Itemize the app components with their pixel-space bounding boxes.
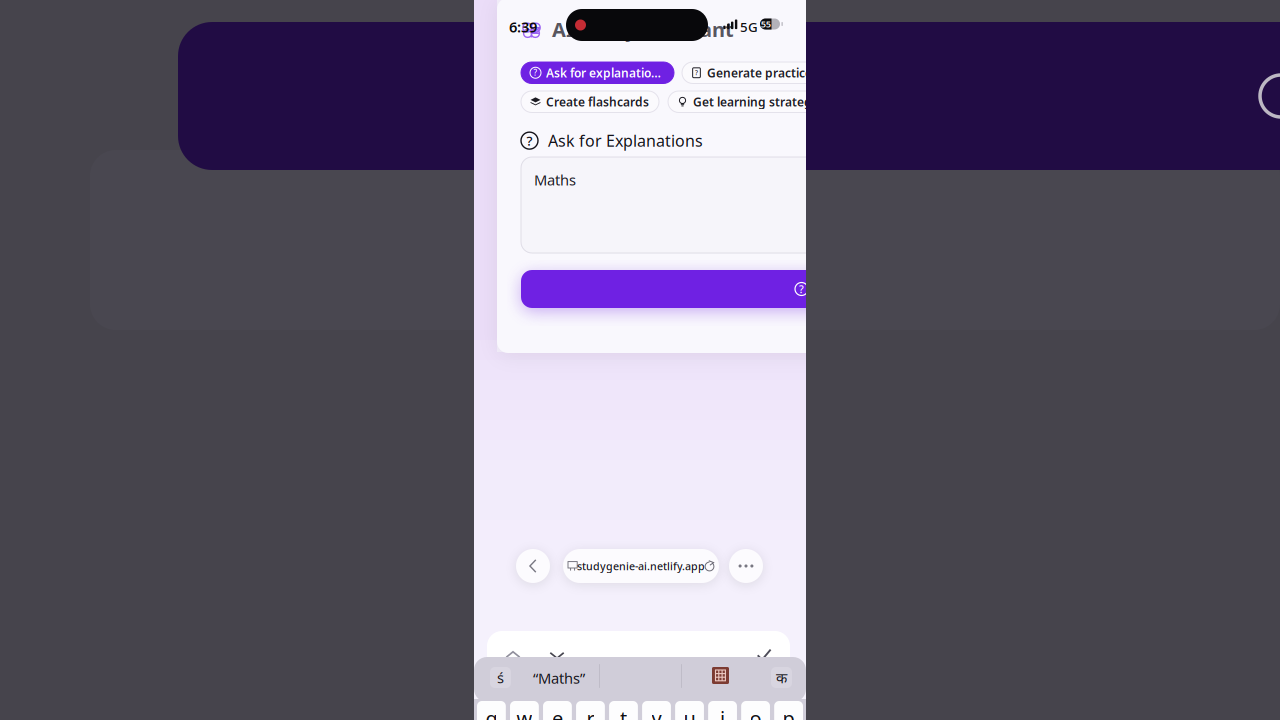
button[interactable]: u — [675, 701, 704, 720]
staticText: e — [552, 705, 563, 720]
staticText: p — [783, 705, 795, 720]
button[interactable]: Emoji keyboard — [712, 667, 729, 684]
staticText: 5G — [740, 18, 758, 36]
button[interactable]: o — [741, 701, 770, 720]
staticText: “Maths” — [533, 668, 585, 688]
button[interactable]: “Maths” — [522, 666, 596, 690]
button[interactable]: ? — [682, 62, 870, 83]
staticText: ś — [497, 668, 504, 687]
button[interactable]: Accent suggestion — [490, 667, 511, 688]
staticText: studygenie-ai.netlify.app — [577, 559, 705, 573]
button[interactable]: Next field — [535, 640, 579, 670]
staticText: r — [586, 705, 594, 720]
staticText: t — [620, 705, 627, 720]
button[interactable]: Create flashcards — [521, 91, 659, 112]
staticText: Create flashcards — [546, 94, 649, 110]
button[interactable]: ? — [521, 62, 674, 83]
button[interactable]: y — [642, 701, 671, 720]
button[interactable]: q — [477, 701, 506, 720]
button[interactable]: Previous field — [491, 640, 535, 670]
button[interactable]: Done — [742, 640, 786, 670]
button[interactable]: w — [510, 701, 539, 720]
staticText: q — [485, 705, 497, 720]
button[interactable]: ? — [521, 270, 1203, 308]
button[interactable]: i — [708, 701, 737, 720]
staticText: क — [776, 668, 787, 687]
button[interactable]: More — [729, 549, 763, 583]
staticText: Generate practice questions — [707, 65, 860, 81]
staticText: w — [516, 705, 532, 720]
staticText: ? — [533, 67, 537, 78]
staticText: AI Study Assistant — [552, 16, 734, 43]
staticText: 6:39 — [509, 17, 537, 36]
button[interactable]: Get learning strategies — [668, 91, 836, 112]
staticText: Get learning strategies — [693, 94, 826, 110]
staticText: o — [750, 705, 762, 720]
button[interactable]: p — [774, 701, 803, 720]
staticText: u — [683, 705, 695, 720]
button[interactable]: Devanagari keyboard — [771, 667, 792, 688]
staticText: i — [720, 705, 725, 720]
button[interactable]: e — [543, 701, 572, 720]
staticText: ? — [526, 132, 532, 149]
staticText: Ask for Explanations — [548, 130, 703, 151]
staticText: ? — [695, 68, 698, 77]
staticText: Maths — [534, 170, 576, 189]
staticText: 55 — [761, 18, 771, 30]
staticText: y — [651, 705, 661, 720]
button[interactable]: r — [576, 701, 605, 720]
button[interactable]: Back — [516, 549, 550, 583]
button[interactable]: studygenie-ai.netlify.app — [563, 549, 719, 583]
staticText: ? — [799, 282, 804, 296]
button[interactable]: t — [609, 701, 638, 720]
staticText: Ask for explanations — [546, 65, 664, 81]
